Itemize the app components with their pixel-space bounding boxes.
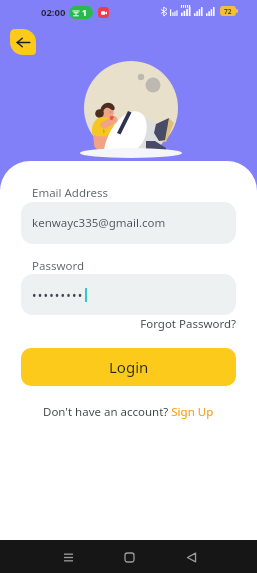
staticText: 02:00 bbox=[41, 6, 66, 19]
staticText: 1 bbox=[82, 7, 87, 19]
button[interactable]: Recent apps bbox=[52, 541, 84, 573]
staticText: Login bbox=[109, 357, 149, 377]
staticText: Email Address bbox=[32, 185, 109, 201]
button[interactable]: ••••••••• bbox=[21, 274, 236, 315]
button[interactable]: Back bbox=[175, 541, 207, 573]
staticText: Don't have an account? Sign Up bbox=[43, 404, 214, 420]
staticText: ••••••••• bbox=[32, 287, 84, 303]
button[interactable]: Login bbox=[21, 348, 236, 386]
button[interactable]: kenwayc335@gmail.com bbox=[21, 202, 236, 244]
staticText: kenwayc335@gmail.com bbox=[32, 215, 166, 231]
button[interactable]: Don't have an account? Sign Up bbox=[0, 404, 257, 420]
staticText: 72 bbox=[224, 7, 232, 16]
button[interactable]: Back bbox=[10, 29, 36, 55]
staticText: Password bbox=[32, 258, 85, 274]
staticText: Forgot Password? bbox=[0, 316, 236, 332]
button[interactable]: Home bbox=[113, 541, 145, 573]
